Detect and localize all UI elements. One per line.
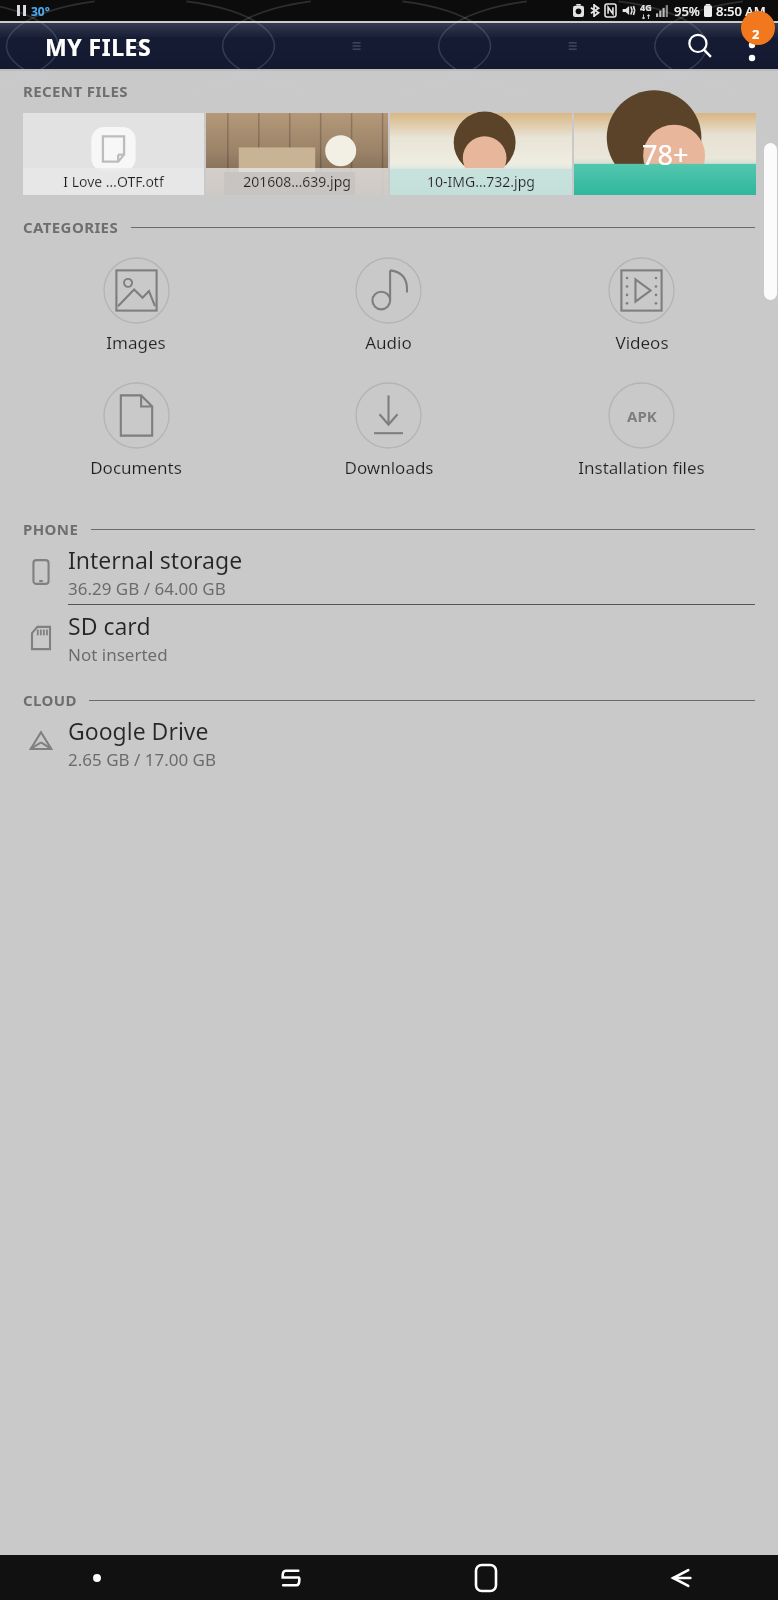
button[interactable]: I Love …OTF.otf <box>23 113 204 195</box>
staticText: 10-IMG…732.jpg <box>427 172 535 191</box>
staticText: 8:50 AM <box>716 2 766 20</box>
button[interactable]: Audio <box>262 257 515 354</box>
button[interactable]: 10-IMG…732.jpg <box>390 113 572 195</box>
button[interactable]: Home <box>388 1555 583 1600</box>
button[interactable]: 201608…639.jpg <box>206 113 388 195</box>
staticText: 4G <box>640 1 652 13</box>
button[interactable]: More options <box>726 21 778 71</box>
staticText: Internal storage <box>68 544 243 575</box>
button[interactable]: Recents <box>194 1555 388 1600</box>
button[interactable]: APK <box>515 382 768 479</box>
staticText: 36.29 GB / 64.00 GB <box>68 577 226 600</box>
staticText: CLOUD <box>23 690 77 710</box>
staticText: Documents <box>90 456 182 479</box>
staticText: Images <box>106 331 166 354</box>
staticText: Audio <box>365 331 412 354</box>
staticText: Google Drive <box>68 715 209 746</box>
staticText: SD card <box>68 610 151 641</box>
button[interactable]: Search <box>674 21 726 71</box>
staticText: 2.65 GB / 17.00 GB <box>68 748 217 771</box>
button[interactable]: Back <box>583 1555 778 1600</box>
button[interactable]: 78+ <box>574 113 756 195</box>
staticText: 95% <box>674 2 700 20</box>
button[interactable]: Downloads <box>262 382 515 479</box>
staticText: Downloads <box>344 456 434 479</box>
staticText: PHONE <box>23 519 79 539</box>
staticText: 30° <box>31 3 50 19</box>
staticText: Installation files <box>578 456 705 479</box>
staticText: APK <box>627 406 657 426</box>
staticText: 201608…639.jpg <box>243 172 351 191</box>
button[interactable]: Images <box>10 257 262 354</box>
button[interactable]: Assistant <box>0 1555 194 1600</box>
button[interactable]: Google Drive <box>0 710 778 775</box>
staticText: I Love …OTF.otf <box>63 172 164 191</box>
staticText: CATEGORIES <box>23 217 119 237</box>
staticText: 2 <box>752 25 760 43</box>
staticText: Videos <box>615 331 669 354</box>
button[interactable]: Documents <box>10 382 262 479</box>
button[interactable]: Videos <box>515 257 768 354</box>
button[interactable]: Internal storage <box>0 539 778 604</box>
button[interactable]: SD card <box>0 605 778 670</box>
staticText: Not inserted <box>68 643 168 666</box>
staticText: MY FILES <box>45 31 152 62</box>
staticText: RECENT FILES <box>23 81 128 101</box>
staticText: 78+ <box>642 136 689 173</box>
staticText: ↓↑ <box>641 13 652 20</box>
